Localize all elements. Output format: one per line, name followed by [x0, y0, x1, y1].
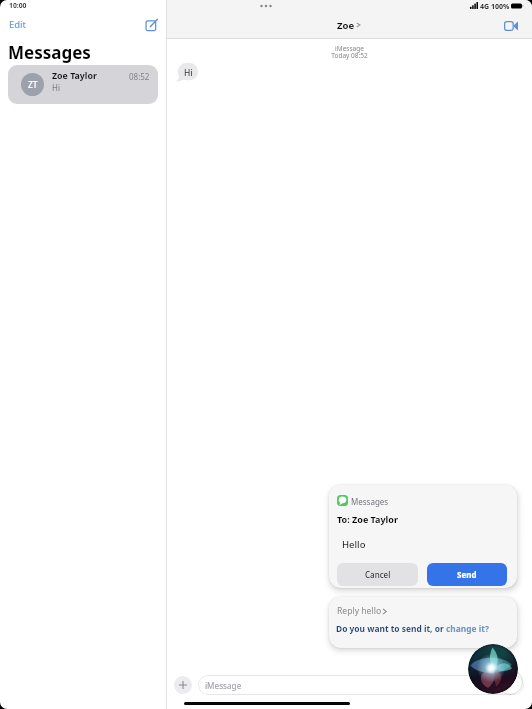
staticText: Hello	[342, 538, 366, 551]
staticText: Cancel	[365, 569, 391, 580]
staticText: Zoe	[337, 19, 355, 32]
staticText: iMessage	[167, 44, 532, 53]
button[interactable]: ZT	[8, 65, 158, 104]
button[interactable]: Edit	[6, 16, 30, 33]
button[interactable]: New message	[143, 17, 160, 34]
staticText: 4G	[480, 2, 490, 12]
staticText: Hi	[52, 82, 60, 93]
button[interactable]: Video call	[504, 21, 518, 31]
staticText: Messages	[351, 496, 389, 507]
staticText: Send	[457, 569, 477, 580]
staticText: 08:52	[129, 71, 150, 82]
staticText: iMessage	[205, 680, 242, 691]
staticText: Zoe Taylor	[52, 70, 97, 82]
staticText: 100%	[491, 2, 510, 12]
button[interactable]: iMessage	[198, 675, 524, 695]
staticText: Do you want to send it, or	[336, 623, 446, 634]
button[interactable]: Send	[427, 563, 507, 586]
staticText: ZT	[28, 79, 38, 91]
staticText: Reply hello	[337, 605, 382, 617]
staticText: 10:00	[9, 1, 27, 10]
staticText: Messages	[8, 41, 91, 64]
button[interactable]: Cancel	[337, 563, 418, 586]
staticText: Today 08:52	[167, 51, 532, 60]
button[interactable]: Add attachment	[174, 676, 192, 694]
button[interactable]: Siri	[468, 644, 518, 694]
button[interactable]: Reply hello	[329, 597, 517, 648]
staticText: Hi	[184, 67, 193, 79]
staticText: change it?	[446, 623, 489, 634]
staticText: Edit	[9, 18, 27, 31]
staticText: To: Zoe Taylor	[337, 513, 398, 525]
